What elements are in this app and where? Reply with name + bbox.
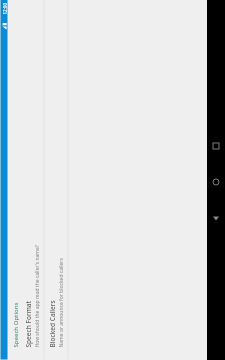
staticText: Blocked Callers	[47, 299, 56, 347]
button[interactable]: Home	[207, 172, 225, 192]
button[interactable]: Blocked Callers	[44, 0, 67, 359]
button[interactable]: Back	[207, 208, 225, 228]
staticText: Name or announce for blocked callers	[57, 257, 64, 347]
button[interactable]: Speech Format	[20, 0, 43, 359]
button[interactable]: Recents	[207, 136, 225, 156]
staticText: How should the app read the caller's nam…	[33, 244, 40, 347]
staticText: Speech Options	[11, 302, 19, 347]
staticText: 12:00	[1, 2, 7, 14]
staticText: Speech Format	[23, 300, 32, 347]
